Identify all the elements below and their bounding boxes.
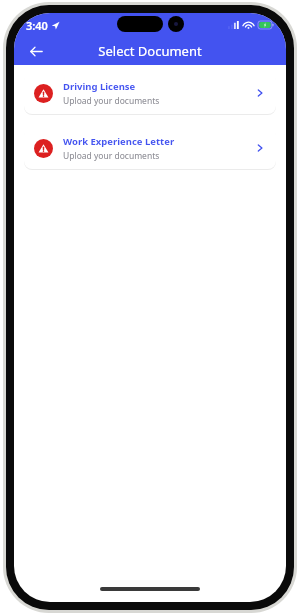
staticText: 3:40 — [26, 18, 48, 33]
other: Open — [254, 87, 266, 99]
other: Open — [254, 142, 266, 154]
staticText: Upload your documents — [63, 150, 160, 162]
staticText: Driving License — [63, 80, 136, 93]
button[interactable]: Work Experience Letter — [24, 127, 276, 169]
button[interactable]: Driving License — [24, 72, 276, 114]
staticText: Work Experience Letter — [63, 135, 175, 148]
button[interactable]: Back — [22, 37, 50, 65]
staticText: Upload your documents — [63, 95, 160, 107]
staticText: Select Document — [50, 42, 250, 60]
